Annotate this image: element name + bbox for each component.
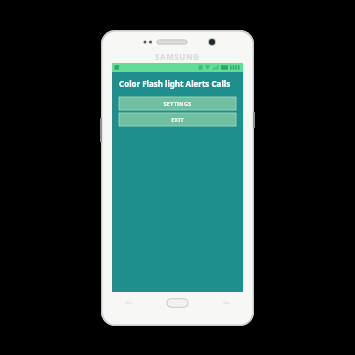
button[interactable]: EXIT: [119, 113, 236, 126]
staticText: EXIT: [171, 116, 184, 123]
staticText: SETTINGS: [163, 100, 192, 107]
staticText: SAMSUNG: [155, 51, 200, 62]
staticText: Color Flash light Alerts Calls: [119, 78, 231, 89]
button[interactable]: SETTINGS: [119, 97, 236, 110]
